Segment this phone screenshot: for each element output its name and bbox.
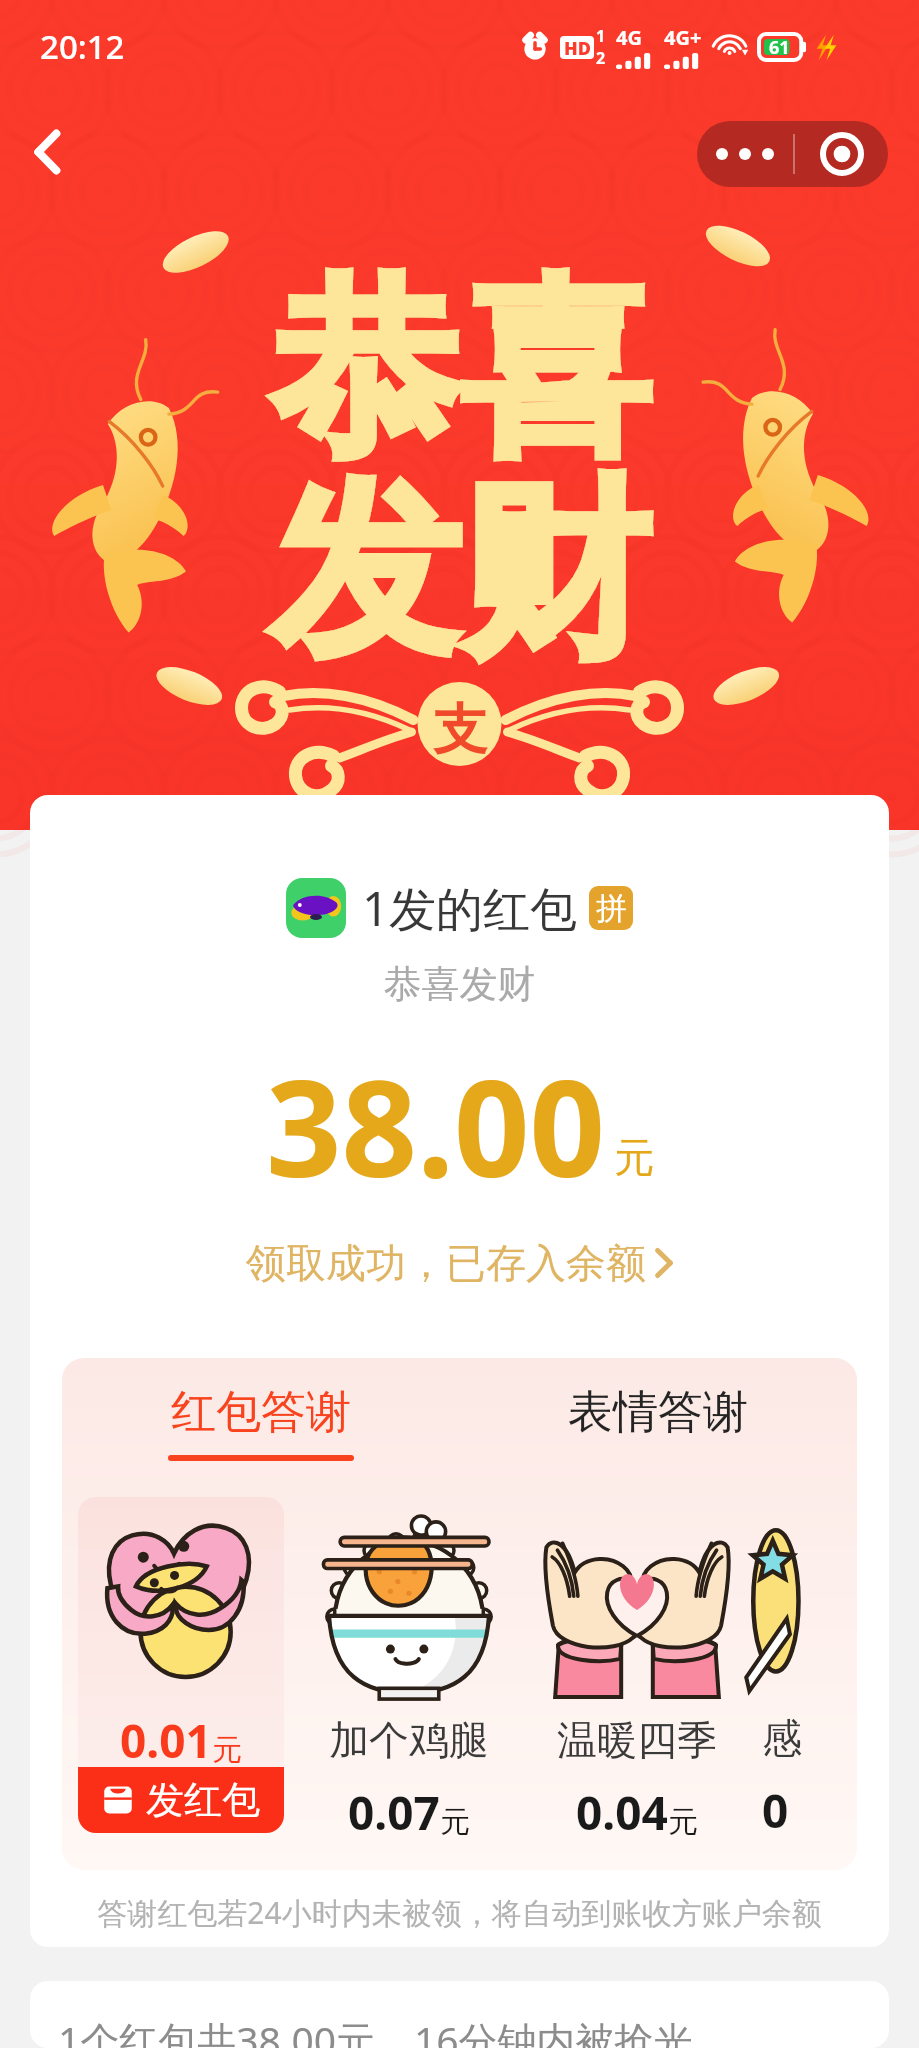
button[interactable]: 发红包 [78, 1767, 284, 1833]
button[interactable]: 0.01 [78, 1497, 284, 1833]
button[interactable]: 表情答谢 [459, 1384, 857, 1461]
staticText: 恭喜发财 [30, 960, 889, 1008]
button[interactable]: 红包答谢 [62, 1384, 459, 1461]
button[interactable]: More options [697, 121, 793, 187]
button[interactable]: 加个鸡腿 [306, 1497, 512, 1844]
staticText: 答谢红包若24小时内未被领，将自动到账收方账户余额 [30, 1892, 889, 1933]
staticText: 1个红包共38.00元，16分钟内被抢光 [58, 2013, 693, 2048]
staticText: 0.01 [120, 1709, 212, 1772]
button[interactable]: 温暖四季 [534, 1497, 740, 1844]
button[interactable]: 感 [762, 1497, 840, 1842]
staticText: 元 [212, 1731, 242, 1769]
button[interactable]: Back [13, 117, 83, 187]
staticText: 恭喜 [270, 252, 650, 491]
staticText: 0.04 [576, 1781, 668, 1844]
button[interactable]: Close [795, 121, 888, 187]
button[interactable]: 领取成功，已存入余额 [30, 1238, 889, 1288]
staticText: 38.00 [266, 1036, 606, 1216]
staticText: 20:12 [40, 24, 125, 69]
staticText: 元 [614, 1132, 654, 1182]
staticText: 4G [616, 24, 642, 51]
staticText: 温暖四季 [557, 1715, 717, 1765]
staticText: 红包答谢 [171, 1384, 351, 1441]
staticText: 感 [762, 1713, 802, 1763]
staticText: 1 [596, 25, 606, 47]
staticText: 发财 [270, 453, 650, 692]
staticText: 1发的红包 [362, 876, 577, 940]
staticText: 加个鸡腿 [329, 1715, 489, 1765]
button[interactable]: 1个红包共38.00元，16分钟内被抢光 [30, 1981, 889, 2048]
staticText: 表情答谢 [568, 1384, 748, 1441]
staticText: 0.07 [348, 1781, 440, 1844]
staticText: 拼 [596, 889, 627, 928]
staticText: 发红包 [146, 1776, 260, 1824]
staticText: 元 [440, 1803, 470, 1841]
staticText: 61 [769, 35, 790, 60]
staticText: 元 [668, 1803, 698, 1841]
staticText: 支 [433, 696, 487, 764]
staticText: 4G+ [664, 24, 702, 51]
staticText: 领取成功，已存入余额 [246, 1238, 646, 1288]
staticText: 0 [762, 1779, 789, 1842]
staticText: 2 [596, 47, 606, 69]
staticText: HD [564, 36, 591, 59]
